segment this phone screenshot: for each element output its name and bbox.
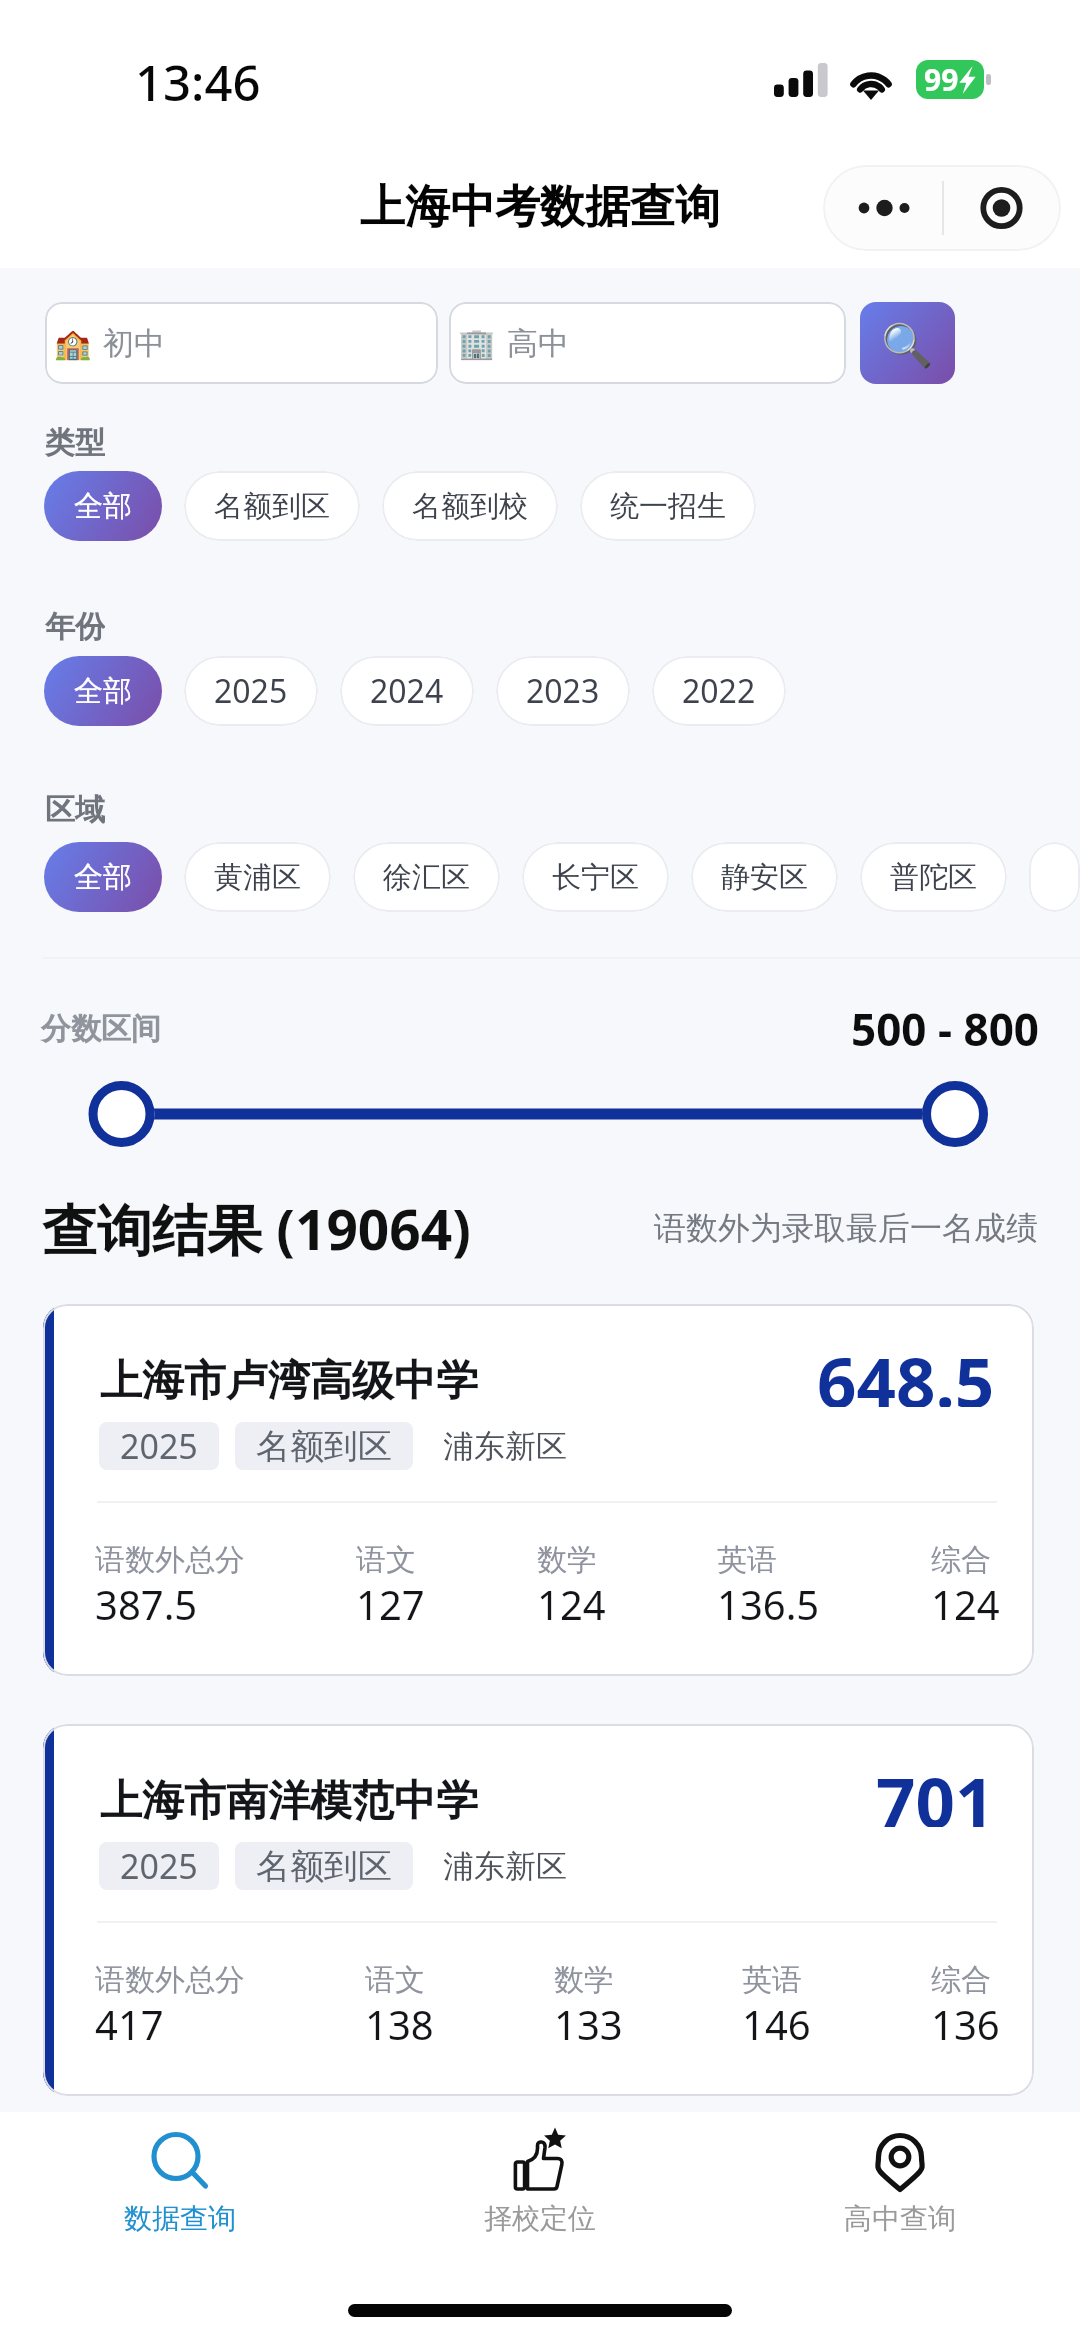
staticText: 名额到区 bbox=[214, 487, 330, 525]
staticText: 名额到区 bbox=[256, 1424, 392, 1469]
staticText: 全部 bbox=[74, 672, 132, 710]
button[interactable]: 2023 bbox=[496, 656, 630, 726]
staticText: 黄浦区 bbox=[214, 858, 301, 896]
staticText: 133 bbox=[554, 1999, 623, 2045]
button[interactable]: 长宁区 bbox=[522, 842, 669, 912]
staticText: 类型 bbox=[45, 423, 105, 457]
staticText: 浦东新区 bbox=[443, 1426, 567, 1467]
button[interactable]: 🏢 bbox=[449, 302, 846, 384]
staticText: 上海市南洋模范中学 bbox=[100, 1774, 478, 1829]
staticText: 2024 bbox=[370, 670, 444, 712]
button[interactable]: 上海市南洋模范中学 bbox=[43, 1724, 1034, 2096]
staticText: 🏢 bbox=[458, 323, 496, 363]
staticText: 全部 bbox=[74, 487, 132, 525]
staticText: 名额到校 bbox=[412, 487, 528, 525]
staticText: 数学 bbox=[537, 1540, 597, 1578]
button[interactable]: Close mini program bbox=[944, 165, 1061, 251]
button[interactable]: 2024 bbox=[340, 656, 474, 726]
button[interactable]: 2025 bbox=[184, 656, 318, 726]
staticText: 数据查询 bbox=[124, 2200, 236, 2237]
staticText: 综合 bbox=[931, 1540, 991, 1578]
staticText: 2025 bbox=[120, 1844, 198, 1889]
staticText: 13:46 bbox=[135, 50, 261, 108]
button[interactable]: 数据查询 bbox=[0, 2112, 360, 2272]
button[interactable]: 统一招生 bbox=[580, 471, 756, 541]
button[interactable]: More options bbox=[823, 165, 942, 251]
staticText: 综合 bbox=[931, 1960, 991, 1998]
staticText: 2022 bbox=[682, 670, 756, 712]
staticText: 语数外为录取最后一名成绩 bbox=[654, 1207, 1038, 1249]
staticText: 上海市卢湾高级中学 bbox=[100, 1354, 478, 1409]
staticText: 统一招生 bbox=[610, 487, 726, 525]
button[interactable]: 静安区 bbox=[691, 842, 838, 912]
staticText: 普陀区 bbox=[890, 858, 977, 896]
staticText: 择校定位 bbox=[484, 2200, 596, 2237]
staticText: 99 bbox=[924, 60, 959, 99]
button[interactable]: 全部 bbox=[44, 656, 162, 726]
staticText: 146 bbox=[742, 1999, 811, 2045]
button[interactable]: 高中查询 bbox=[720, 2112, 1080, 2272]
staticText: 长宁区 bbox=[552, 858, 639, 896]
staticText: 高中查询 bbox=[844, 2200, 956, 2237]
staticText: 127 bbox=[356, 1579, 425, 1625]
button[interactable]: 2022 bbox=[652, 656, 786, 726]
staticText: 浦东新区 bbox=[443, 1846, 567, 1887]
staticText: 🏫 bbox=[54, 323, 92, 363]
staticText: 648.5 bbox=[817, 1337, 995, 1407]
staticText: 417 bbox=[95, 1999, 164, 2045]
staticText: 数学 bbox=[554, 1960, 614, 1998]
staticText: 年份 bbox=[45, 607, 105, 641]
staticText: 138 bbox=[365, 1999, 434, 2045]
staticText: 2025 bbox=[120, 1424, 198, 1469]
staticText: 2023 bbox=[526, 670, 600, 712]
staticText: 语文 bbox=[365, 1960, 425, 1998]
staticText: 静安区 bbox=[721, 858, 808, 896]
staticText: 分数区间 bbox=[41, 1009, 161, 1049]
staticText: 全部 bbox=[74, 858, 132, 896]
staticText: 语数外总分 bbox=[95, 1960, 245, 1998]
button[interactable]: 全部 bbox=[44, 842, 162, 912]
staticText: 初中 bbox=[103, 323, 165, 364]
staticText: 徐汇区 bbox=[383, 858, 470, 896]
staticText: 2025 bbox=[214, 670, 288, 712]
button[interactable]: 名额到区 bbox=[184, 471, 360, 541]
staticText: 查询结果 (19064) bbox=[42, 1193, 471, 1263]
button[interactable]: 全部 bbox=[44, 471, 162, 541]
staticText: 124 bbox=[931, 1579, 1000, 1625]
staticText: 英语 bbox=[742, 1960, 802, 1998]
staticText: 124 bbox=[537, 1579, 606, 1625]
button[interactable]: 黄浦区 bbox=[184, 842, 331, 912]
staticText: 上海中考数据查询 bbox=[360, 178, 720, 237]
button[interactable]: 徐汇区 bbox=[353, 842, 500, 912]
button[interactable]: 🏫 bbox=[45, 302, 438, 384]
staticText: 500 - 800 bbox=[851, 1000, 1039, 1058]
button[interactable]: 普陀区 bbox=[860, 842, 1007, 912]
staticText: 🔍 bbox=[881, 316, 934, 371]
staticText: 名额到区 bbox=[256, 1844, 392, 1889]
staticText: 英语 bbox=[717, 1540, 777, 1578]
button[interactable]: 择校定位 bbox=[360, 2112, 720, 2272]
staticText: 136 bbox=[931, 1999, 1000, 2045]
button[interactable]: 名额到校 bbox=[382, 471, 558, 541]
staticText: 语文 bbox=[356, 1540, 416, 1578]
button[interactable]: 虹口区 bbox=[1029, 842, 1080, 912]
button[interactable]: Search bbox=[860, 302, 955, 384]
staticText: 区域 bbox=[45, 790, 105, 824]
staticText: 701 bbox=[876, 1757, 995, 1827]
button[interactable]: 上海市卢湾高级中学 bbox=[43, 1304, 1034, 1676]
staticText: 语数外总分 bbox=[95, 1540, 245, 1578]
staticText: 高中 bbox=[507, 323, 569, 364]
staticText: 136.5 bbox=[717, 1579, 820, 1625]
staticText: 387.5 bbox=[95, 1579, 198, 1625]
